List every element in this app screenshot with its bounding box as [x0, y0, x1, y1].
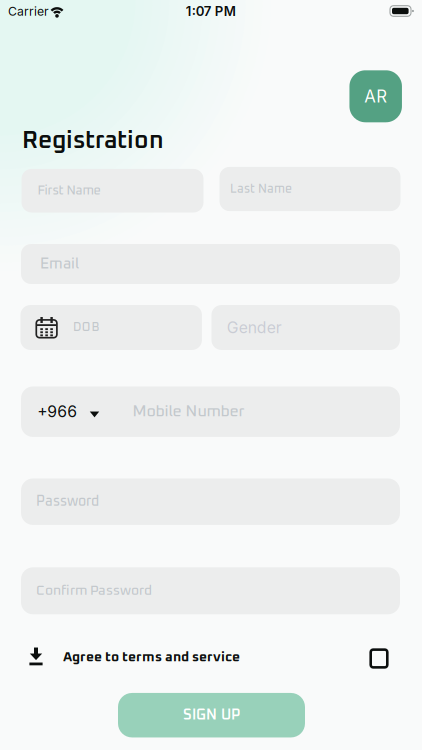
button[interactable]: SIGN UP	[118, 693, 305, 737]
button[interactable]: Last Name	[219, 167, 400, 211]
button[interactable]: First Name	[21, 169, 203, 212]
button[interactable]: Password	[21, 478, 400, 525]
button[interactable]: AR	[349, 70, 402, 122]
staticText: Last Name	[230, 183, 292, 195]
staticText: Mobile Number	[132, 404, 244, 420]
staticText: Registration	[22, 128, 164, 153]
staticText: Confirm Password	[36, 584, 152, 598]
staticText: +966	[37, 402, 77, 421]
button[interactable]: +966	[21, 386, 400, 437]
staticText: Password	[36, 495, 99, 509]
button[interactable]: Confirm Password	[21, 567, 400, 614]
button[interactable]: Email	[21, 244, 400, 284]
staticText: DOB	[73, 321, 100, 334]
staticText: First Name	[37, 184, 100, 197]
staticText: SIGN UP	[183, 708, 240, 723]
staticText: AR	[364, 86, 387, 106]
staticText: Email	[40, 256, 79, 272]
staticText: Carrier	[8, 4, 49, 19]
button[interactable]: Agree to terms and service	[371, 650, 387, 667]
staticText: 1:07 PM	[186, 3, 236, 19]
staticText: Gender	[227, 318, 282, 337]
staticText: Agree to terms and service	[63, 650, 240, 664]
button[interactable]: Gender	[211, 305, 400, 350]
button[interactable]: DOB	[20, 305, 202, 350]
